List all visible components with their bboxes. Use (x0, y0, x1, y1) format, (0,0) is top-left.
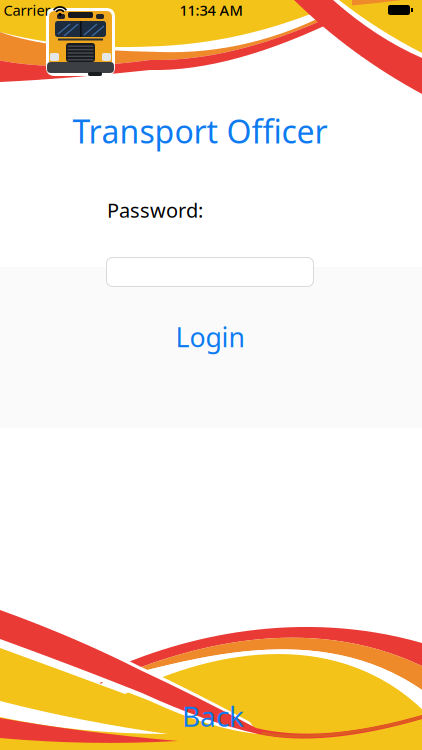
staticText: Password: (107, 197, 203, 223)
button[interactable]: Back (182, 697, 244, 735)
staticText: Transport Officer (72, 110, 327, 152)
staticText: Login (175, 319, 244, 355)
staticText: 11:34 AM (179, 0, 242, 20)
staticText: Carrier (3, 0, 50, 20)
staticText: Back (182, 697, 244, 735)
button[interactable]: Password (106, 257, 313, 286)
button[interactable]: Login (175, 319, 244, 355)
